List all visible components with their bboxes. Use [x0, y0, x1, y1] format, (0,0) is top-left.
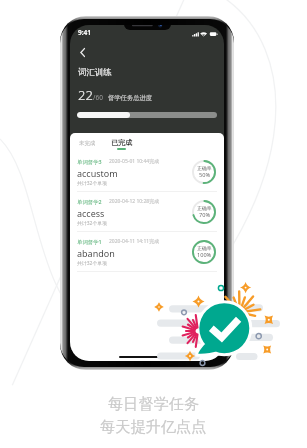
staticText: abandon	[77, 247, 115, 259]
button[interactable]: 单词督学2	[70, 192, 224, 232]
staticText: 共计32个单项	[77, 260, 108, 267]
staticText: 每天提升亿点点	[100, 417, 207, 436]
staticText: 9:41	[78, 28, 91, 37]
button[interactable]: 单词督学1	[70, 232, 224, 272]
staticText: 2020-05-01 10:44完成	[109, 158, 160, 165]
staticText: accustom	[77, 167, 118, 179]
staticText: 正确率	[197, 245, 212, 251]
staticText: 督学任务总进度	[108, 94, 153, 102]
staticText: 已完成	[111, 138, 132, 147]
staticText: 未完成	[79, 140, 96, 147]
staticText: 正确率	[197, 165, 212, 171]
staticText: 22	[78, 86, 93, 104]
button[interactable]: 已完成	[106, 133, 137, 150]
staticText: 50%	[199, 171, 211, 179]
button[interactable]: 未完成	[74, 133, 101, 151]
staticText: /60	[93, 93, 103, 102]
staticText: 单词督学1	[77, 238, 102, 245]
button[interactable]: Back	[73, 43, 91, 61]
staticText: 正确率	[197, 205, 212, 211]
staticText: 单词督学3	[77, 158, 102, 165]
staticText: 100%	[197, 251, 212, 259]
staticText: 单词督学2	[77, 198, 102, 205]
staticText: 共计32个单项	[77, 180, 108, 187]
staticText: 2020-04-11 14:11完成	[109, 238, 160, 245]
staticText: 词汇训练	[78, 67, 112, 78]
staticText: 共计32个单项	[77, 220, 108, 227]
staticText: access	[77, 207, 105, 219]
button[interactable]: 单词督学3	[70, 152, 224, 192]
staticText: 2020-04-12 10:28完成	[109, 198, 160, 205]
staticText: 每日督学任务	[108, 394, 200, 413]
staticText: 70%	[199, 211, 211, 219]
